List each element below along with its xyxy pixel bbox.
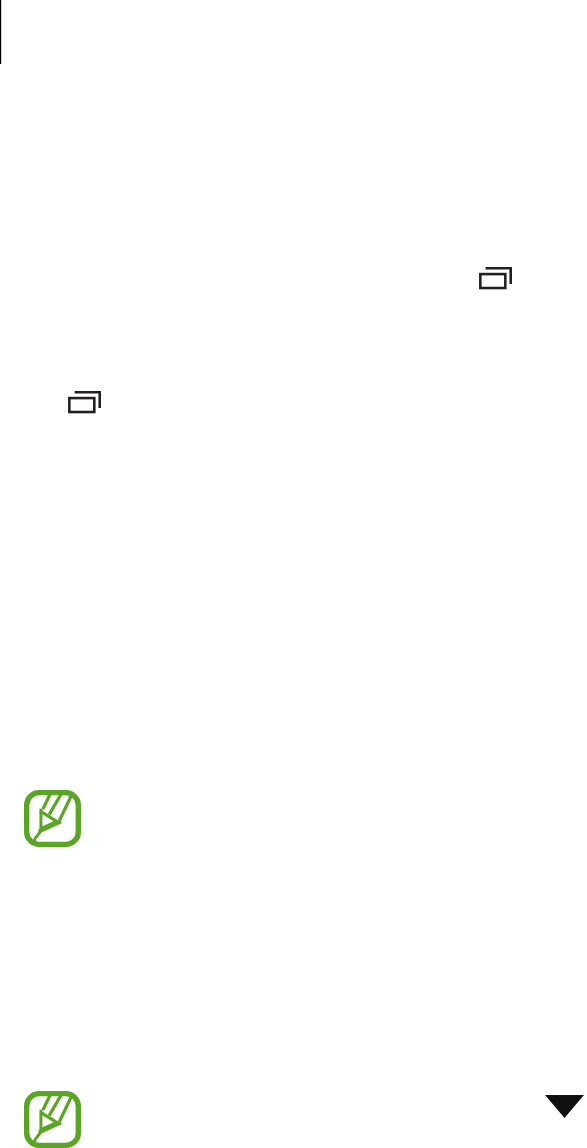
button[interactable]: Samsung Notes — [24, 790, 81, 847]
button[interactable]: Recent apps — [67, 391, 101, 414]
button[interactable]: Samsung Notes — [24, 1091, 81, 1148]
button[interactable]: Recent apps — [478, 267, 512, 290]
button[interactable]: Expand — [545, 1095, 584, 1118]
